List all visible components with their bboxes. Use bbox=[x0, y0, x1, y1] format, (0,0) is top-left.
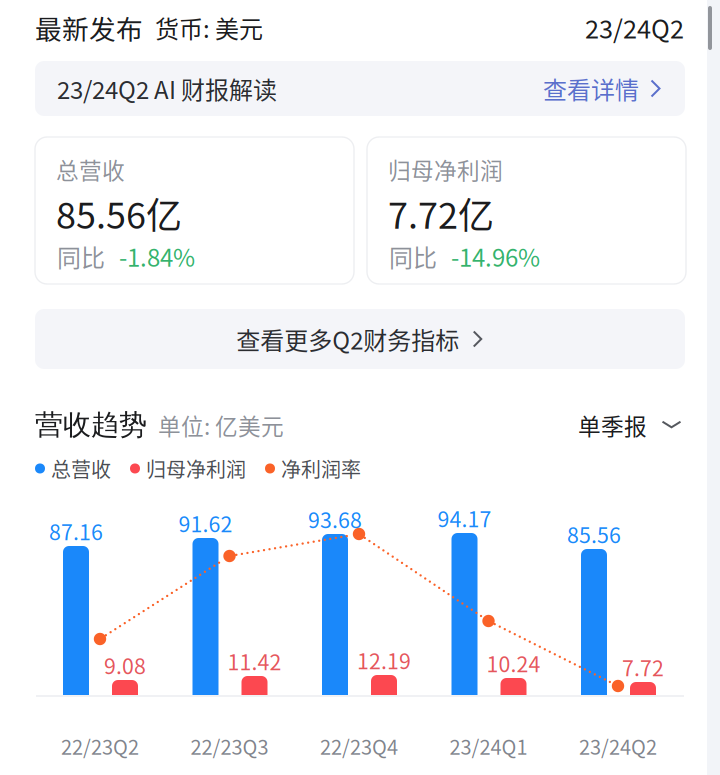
staticText: 93.68 bbox=[308, 504, 362, 534]
staticText: 查看详情 bbox=[543, 71, 639, 106]
staticText: 91.62 bbox=[178, 508, 232, 538]
button[interactable]: 23/24Q2 AI 财报解读 bbox=[35, 61, 685, 116]
staticText: 单位: 亿美元 bbox=[158, 409, 284, 441]
staticText: 23/24Q2 bbox=[585, 9, 684, 46]
staticText: 23/24Q2 AI 财报解读 bbox=[57, 71, 277, 106]
staticText: 最新发布 bbox=[35, 8, 143, 47]
staticText: 9.08 bbox=[104, 650, 146, 680]
button[interactable]: 查看更多Q2财务指标 bbox=[35, 309, 685, 369]
staticText: 营收趋势 bbox=[35, 407, 147, 443]
staticText: 22/23Q3 bbox=[190, 731, 268, 760]
staticText: 10.24 bbox=[486, 648, 540, 678]
staticText: 94.17 bbox=[437, 503, 491, 533]
staticText: -14.96% bbox=[451, 239, 540, 274]
staticText: 23/24Q2 bbox=[579, 731, 657, 760]
staticText: 85.56 bbox=[567, 519, 621, 549]
staticText: 22/23Q2 bbox=[61, 731, 139, 760]
staticText: 12.19 bbox=[357, 645, 411, 675]
staticText: 22/23Q4 bbox=[320, 731, 398, 760]
button[interactable]: 单季报 bbox=[578, 406, 683, 444]
staticText: 单季报 bbox=[578, 409, 647, 441]
staticText: 7.72 bbox=[622, 652, 664, 682]
staticText: 净利润率 bbox=[281, 454, 361, 483]
staticText: 7.72亿 bbox=[388, 187, 494, 239]
staticText: 85.56亿 bbox=[56, 187, 182, 239]
staticText: -1.84% bbox=[119, 239, 195, 274]
staticText: 11.42 bbox=[227, 646, 281, 676]
staticText: 87.16 bbox=[49, 516, 103, 546]
staticText: 归母净利润 bbox=[146, 454, 246, 483]
staticText: 23/24Q1 bbox=[449, 731, 527, 760]
staticText: 总营收 bbox=[56, 153, 125, 186]
staticText: 查看更多Q2财务指标 bbox=[236, 322, 459, 356]
staticText: 同比 bbox=[389, 239, 437, 274]
staticText: 货币: 美元 bbox=[155, 10, 263, 45]
staticText: 总营收 bbox=[51, 454, 111, 483]
staticText: 归母净利润 bbox=[388, 153, 503, 186]
staticText: 同比 bbox=[57, 239, 105, 274]
